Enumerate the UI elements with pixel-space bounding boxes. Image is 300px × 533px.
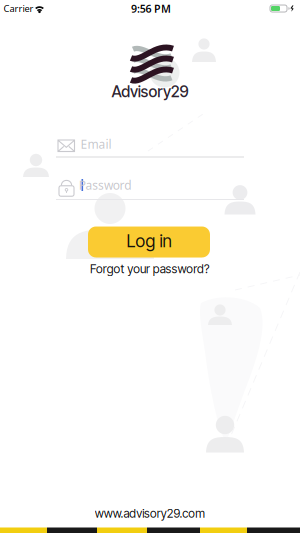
staticText: 9:56 PM bbox=[131, 1, 171, 16]
staticText: Log in bbox=[126, 230, 171, 251]
button[interactable]: Password bbox=[56, 174, 244, 200]
button[interactable]: Log in bbox=[88, 226, 210, 257]
staticText: www.advisory29.com bbox=[95, 506, 205, 521]
staticText: Email bbox=[80, 136, 111, 152]
button[interactable]: Email bbox=[56, 133, 244, 159]
staticText: Forgot your password? bbox=[90, 262, 210, 276]
staticText: Advisory29 bbox=[111, 82, 189, 101]
staticText: Password bbox=[79, 177, 131, 193]
button[interactable]: www.advisory29.com bbox=[95, 506, 205, 521]
button[interactable]: Forgot your password? bbox=[90, 262, 210, 276]
staticText: Carrier bbox=[3, 2, 33, 15]
